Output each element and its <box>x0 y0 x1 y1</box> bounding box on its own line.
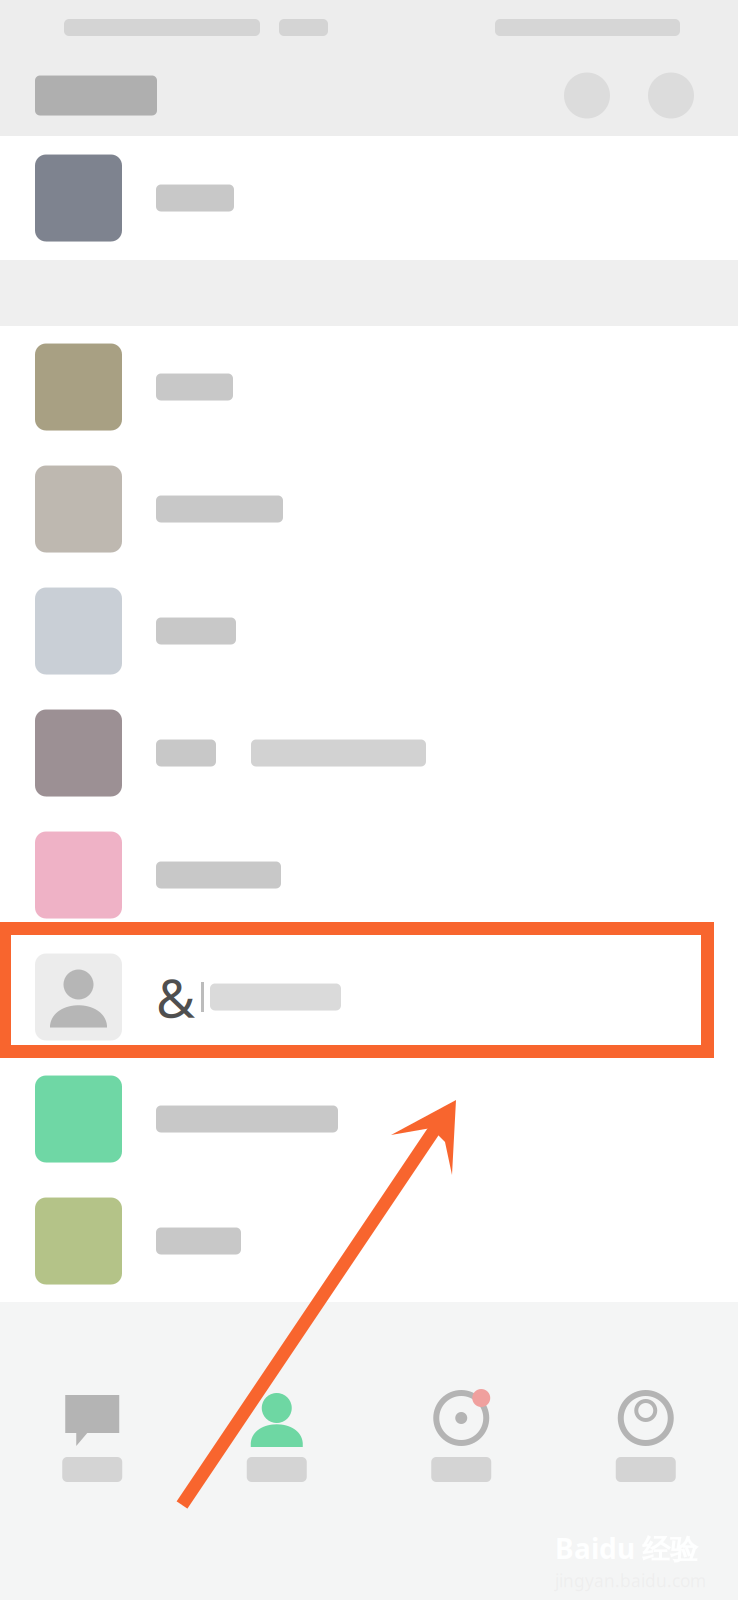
button[interactable] <box>0 136 738 260</box>
button[interactable]: Chats <box>0 1389 184 1482</box>
button[interactable]: Me <box>553 1389 738 1482</box>
button[interactable] <box>0 570 738 692</box>
staticText: & <box>156 962 195 1032</box>
button[interactable] <box>0 814 738 936</box>
button[interactable] <box>0 1180 738 1302</box>
button[interactable]: Search <box>564 72 610 118</box>
button[interactable] <box>0 1058 738 1180</box>
button[interactable]: Add contact <box>648 72 694 118</box>
staticText: Baidu 经验 <box>555 1530 698 1567</box>
button[interactable]: & <box>0 936 738 1058</box>
button[interactable]: Discover <box>369 1389 553 1482</box>
button[interactable] <box>0 326 738 448</box>
button[interactable]: Contacts <box>184 1389 369 1482</box>
button[interactable] <box>0 692 738 814</box>
button[interactable] <box>0 448 738 570</box>
